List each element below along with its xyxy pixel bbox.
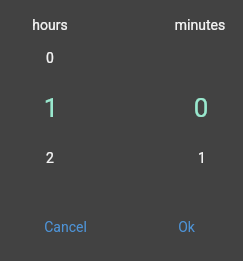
staticText: 0 (10, 50, 90, 66)
button[interactable]: Ok (167, 209, 205, 245)
staticText: 2 (10, 150, 90, 166)
staticText: Cancel (44, 219, 87, 235)
button[interactable]: hours (0, 12, 100, 192)
staticText: Ok (178, 219, 195, 235)
staticText: 1 (11, 93, 91, 123)
button[interactable]: Cancel (39, 209, 91, 245)
staticText: 0 (161, 93, 241, 123)
button[interactable]: minutes (150, 12, 243, 192)
staticText: minutes (160, 17, 240, 33)
staticText: 1 (162, 150, 242, 166)
staticText: hours (10, 17, 90, 33)
